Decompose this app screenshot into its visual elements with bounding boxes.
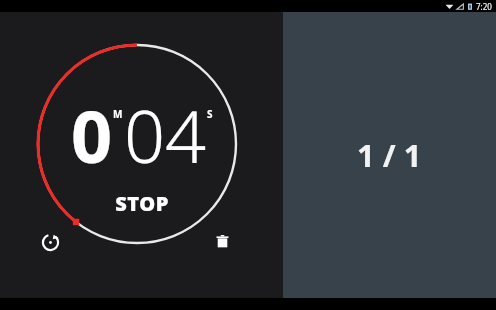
button[interactable]: Lap	[32, 224, 68, 260]
staticText: M	[113, 107, 123, 121]
staticText: STOP	[115, 190, 169, 217]
button[interactable]: 1 / 1	[283, 12, 496, 298]
button[interactable]: Delete	[204, 223, 240, 259]
staticText: S	[207, 107, 213, 121]
button[interactable]: STOP	[82, 188, 202, 218]
staticText: 1 / 1	[357, 134, 422, 176]
staticText: 04	[124, 86, 207, 184]
staticText: 7:20	[476, 1, 492, 12]
staticText: 0	[71, 86, 113, 184]
